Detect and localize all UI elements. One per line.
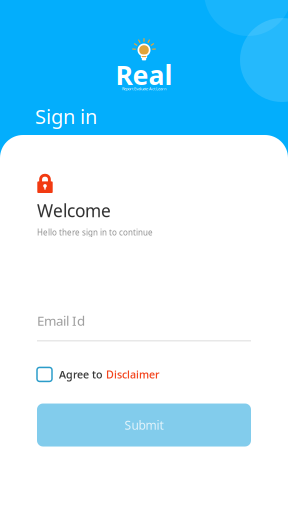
staticText: Sign in: [35, 103, 97, 130]
button[interactable]: Agree to: [37, 367, 103, 381]
staticText: Email Id: [37, 312, 85, 329]
button[interactable]: Submit: [37, 403, 251, 446]
staticText: Submit: [124, 417, 163, 433]
staticText: Hello there sign in to continue: [37, 227, 153, 238]
staticText: Agree to: [59, 367, 103, 381]
staticText: Disclaimer: [106, 367, 160, 381]
staticText: Report Evaluate Act Learn: [122, 86, 166, 91]
button[interactable]: Disclaimer: [103, 367, 160, 381]
button[interactable]: Email Id: [37, 312, 251, 341]
staticText: Welcome: [37, 199, 111, 222]
staticText: Real: [115, 57, 172, 92]
